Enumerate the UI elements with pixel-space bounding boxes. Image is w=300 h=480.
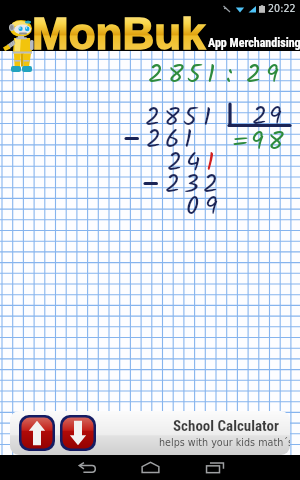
staticText: MonBuk (32, 9, 206, 58)
staticText: 9 (266, 54, 279, 95)
staticText: 2 (246, 54, 262, 95)
staticText: 2 (148, 54, 164, 95)
button[interactable]: Recents (190, 455, 240, 480)
staticText: 2 (146, 119, 162, 160)
button[interactable]: Scroll up (18, 414, 56, 452)
button[interactable]: Home (125, 455, 175, 480)
button[interactable]: Scroll down (59, 414, 97, 452)
staticText: 5 (183, 97, 197, 138)
staticText: : (226, 54, 233, 95)
staticText: 1 (184, 119, 193, 160)
staticText: 2 (203, 164, 219, 205)
staticText: 6 (165, 119, 180, 160)
staticText: 20:22 (268, 3, 296, 14)
staticText: 3 (184, 164, 199, 205)
staticText: 9 (269, 96, 282, 137)
button[interactable]: Back (62, 455, 112, 480)
staticText: 8 (268, 121, 284, 162)
staticText: 5 (187, 54, 201, 95)
staticText: 2 (167, 142, 183, 183)
staticText: 0 (186, 186, 200, 227)
staticText: 2 (165, 164, 181, 205)
staticText: 1 (207, 54, 216, 95)
staticText: App Merchandising (208, 36, 300, 50)
staticText: = (232, 122, 249, 163)
staticText: 1 (206, 142, 215, 183)
staticText: 2 (145, 97, 161, 138)
staticText: 1 (203, 97, 212, 138)
staticText: 2 (252, 96, 268, 137)
staticText: helps with your kids math´s (159, 437, 290, 448)
staticText: School Calculator (173, 417, 279, 435)
staticText: 9 (205, 186, 218, 227)
staticText: 4 (186, 142, 201, 183)
staticText: 9 (251, 121, 264, 162)
staticText: 8 (164, 97, 180, 138)
staticText: 8 (168, 54, 184, 95)
button[interactable]: Scroll up (10, 411, 290, 455)
